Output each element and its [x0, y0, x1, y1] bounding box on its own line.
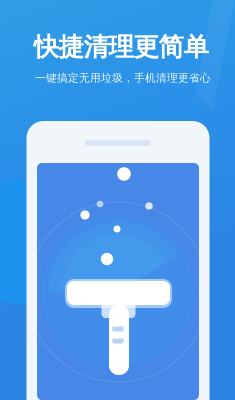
staticText: 一键搞定无用垃圾，手机清理更省心	[35, 71, 211, 84]
staticText: 快捷清理更简单	[33, 31, 208, 62]
